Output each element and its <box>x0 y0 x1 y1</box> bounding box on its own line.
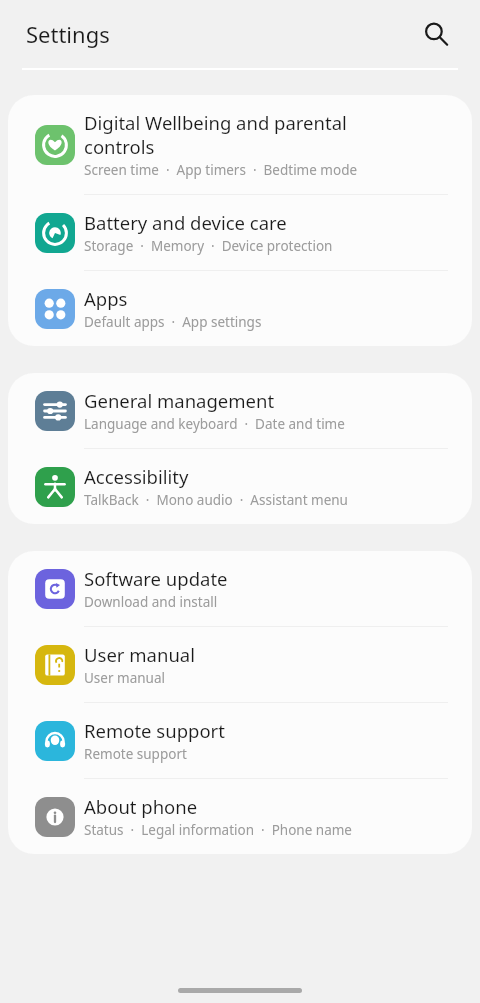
staticText: Accessibility <box>84 464 189 489</box>
staticText: Download and install <box>84 593 218 611</box>
staticText: Default apps · App settings <box>84 313 262 331</box>
staticText: Language and keyboard · Date and time <box>84 415 345 433</box>
staticText: General management <box>84 388 275 413</box>
staticText: Remote support <box>84 718 225 743</box>
staticText: Remote support <box>84 745 187 763</box>
staticText: Screen time · App timers · Bedtime mode <box>84 161 358 179</box>
button[interactable]: Apps <box>8 271 472 346</box>
button[interactable]: Battery and device care <box>8 195 472 271</box>
button[interactable]: Software update <box>8 551 472 627</box>
button[interactable]: Digital Wellbeing and parental controls <box>8 95 472 195</box>
staticText: About phone <box>84 794 198 819</box>
button[interactable]: Search <box>414 12 458 56</box>
staticText: User manual <box>84 669 165 687</box>
button[interactable]: General management <box>8 373 472 449</box>
button[interactable]: About phone <box>8 779 472 854</box>
staticText: Digital Wellbeing and parental controls <box>84 110 347 159</box>
staticText: Storage · Memory · Device protection <box>84 237 333 255</box>
button[interactable]: Remote support <box>8 703 472 779</box>
staticText: Status · Legal information · Phone name <box>84 821 352 839</box>
staticText: User manual <box>84 642 195 667</box>
staticText: Battery and device care <box>84 210 287 235</box>
staticText: Apps <box>84 286 128 311</box>
button[interactable]: User manual <box>8 627 472 703</box>
staticText: Software update <box>84 566 228 591</box>
staticText: Settings <box>26 19 110 49</box>
button[interactable]: Accessibility <box>8 449 472 524</box>
staticText: TalkBack · Mono audio · Assistant menu <box>84 491 348 509</box>
